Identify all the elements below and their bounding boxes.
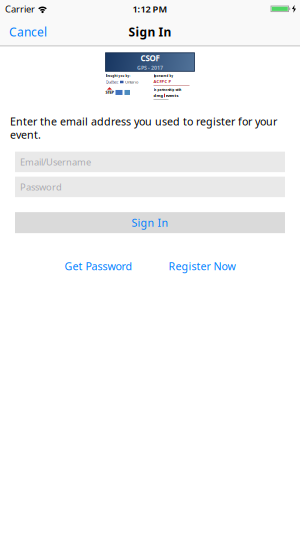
staticText: Cancel (9, 24, 47, 40)
staticText: Sign In (128, 24, 171, 40)
staticText: Email/Username (20, 156, 91, 168)
staticText: Carrier (5, 3, 35, 15)
staticText: STEP (105, 90, 113, 95)
button[interactable]: Sign In (15, 212, 285, 233)
staticText: Brought you by: (105, 74, 130, 78)
button[interactable]: Register Now (168, 259, 235, 273)
staticText: CSOF (140, 53, 159, 63)
staticText: Password (20, 181, 62, 193)
staticText: In partnership with (153, 88, 181, 92)
button[interactable]: Cancel (9, 24, 47, 40)
staticText: Sign In (131, 215, 168, 230)
staticText: 1:12 PM (132, 3, 167, 15)
staticText: GPS - 2017 (137, 64, 163, 71)
staticText: Québec (105, 79, 118, 85)
button[interactable]: Email/Username (15, 152, 285, 172)
staticText: Enter the email address you used to regi… (10, 114, 277, 142)
staticText: Get Password (64, 259, 132, 273)
staticText: Sponsored by (153, 74, 173, 78)
button[interactable]: Password (15, 177, 285, 197)
staticText: dmg (153, 93, 163, 98)
staticText: events (165, 93, 178, 98)
staticText: ACFP C P (153, 79, 170, 84)
button[interactable]: Get Password (64, 259, 132, 273)
staticText: Register Now (168, 259, 235, 273)
staticText: Ontario (125, 79, 138, 85)
